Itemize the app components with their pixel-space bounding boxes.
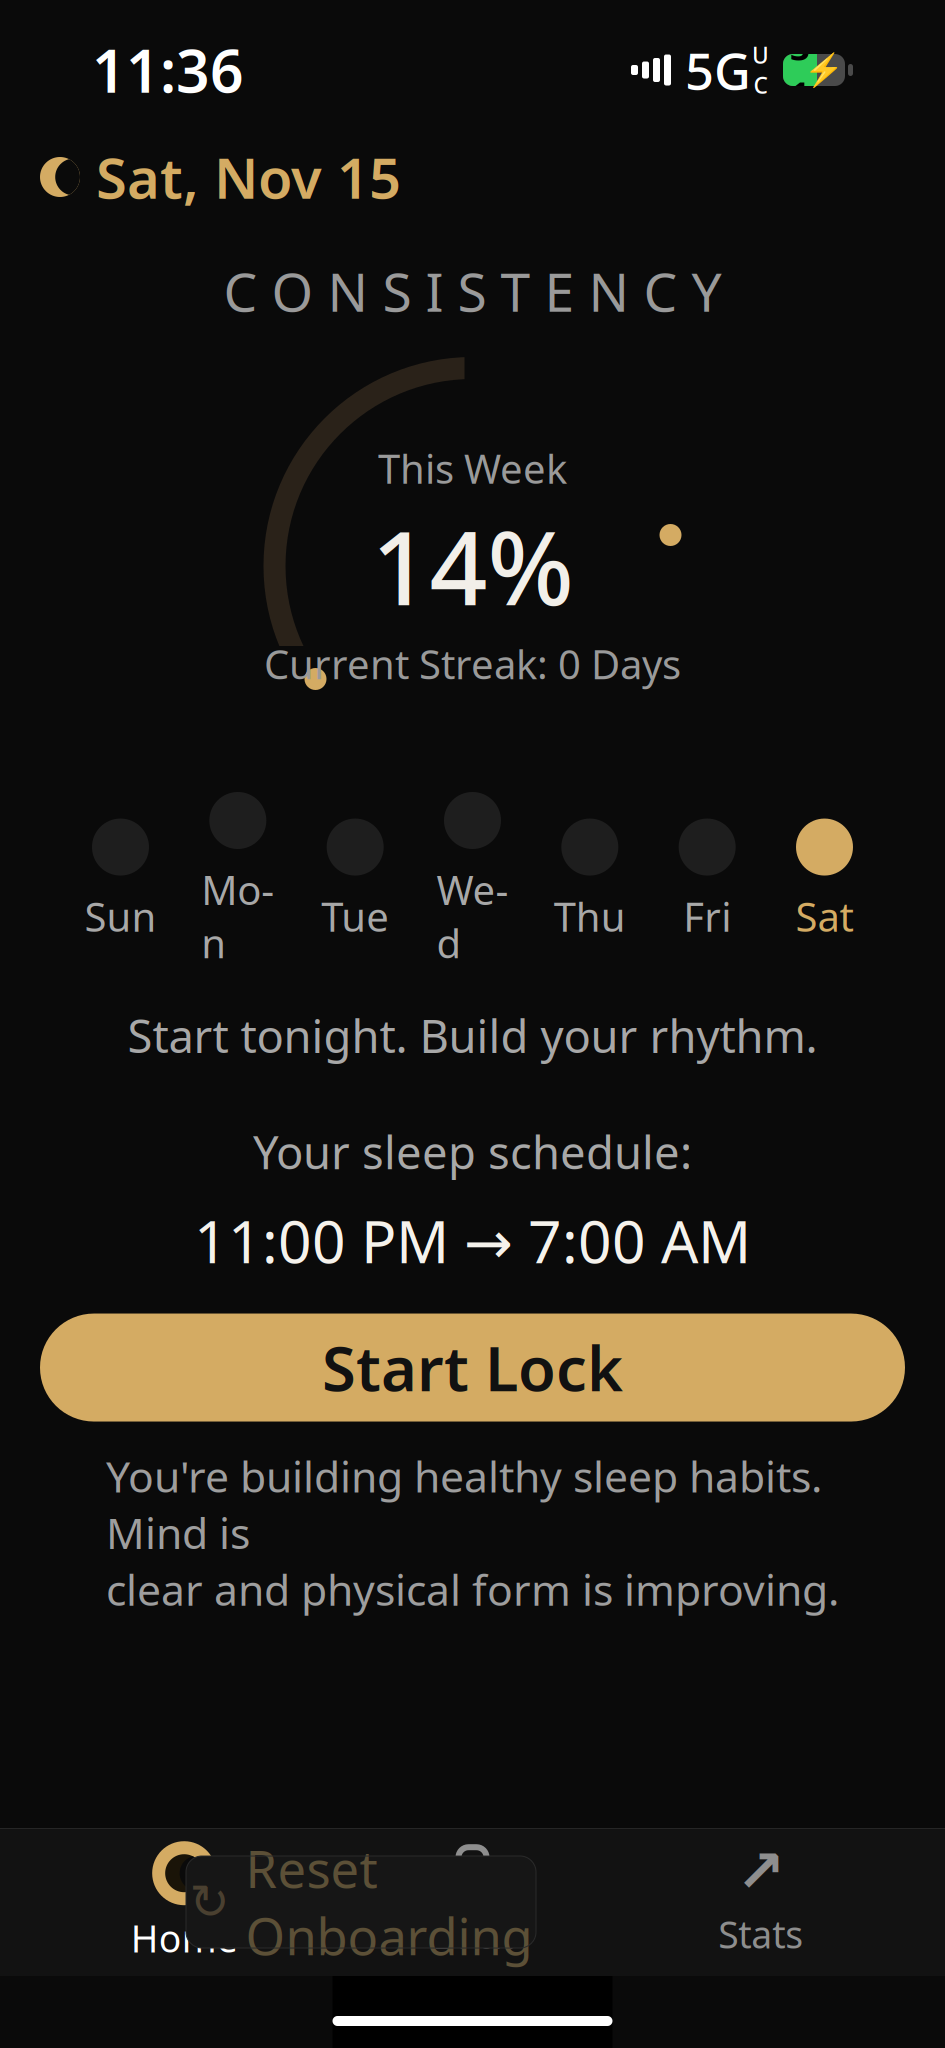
staticText: You're building healthy sleep habits. Mi… (106, 1447, 839, 1617)
staticText: Thu (554, 890, 626, 943)
button[interactable]: Start Lock (40, 1313, 905, 1421)
button[interactable]: Home (40, 1841, 328, 1963)
staticText: Fri (683, 890, 731, 943)
button[interactable]: ↗ (617, 1845, 905, 1959)
staticText: Wed (436, 863, 508, 969)
staticText: ↗ (736, 1838, 785, 1904)
staticText: Sat, Nov 15 (96, 140, 401, 214)
staticText: Your sleep schedule: (253, 1121, 692, 1182)
staticText: ↻ (189, 1875, 229, 1929)
staticText: Reset Onboarding (245, 1835, 532, 1969)
staticText: C (753, 70, 767, 100)
staticText: Tue (321, 890, 389, 943)
button[interactable]: Lock (328, 1845, 617, 1959)
staticText: Start tonight. Build your rhythm. (127, 1005, 817, 1065)
staticText: ⚡ (804, 52, 844, 88)
staticText: 5G (685, 36, 751, 104)
staticText: 31 (790, 24, 810, 116)
staticText: Sat (795, 890, 853, 943)
staticText: This Week (378, 442, 567, 495)
button[interactable]: ↻ (186, 1856, 536, 1948)
staticText: 14% (371, 499, 573, 633)
staticText: Home (131, 1913, 238, 1963)
staticText: Stats (718, 1909, 803, 1959)
staticText: Mon (201, 863, 274, 969)
staticText: U (752, 40, 769, 70)
staticText: Start Lock (322, 1327, 623, 1408)
staticText: Lock (432, 1909, 513, 1959)
staticText: 11:00 PM → 7:00 AM (194, 1202, 751, 1279)
staticText: 11:36 (92, 31, 244, 109)
staticText: Sun (84, 890, 156, 943)
staticText: C O N S I S T E N C Y (223, 256, 721, 326)
staticText: Current Streak: 0 Days (264, 637, 681, 690)
